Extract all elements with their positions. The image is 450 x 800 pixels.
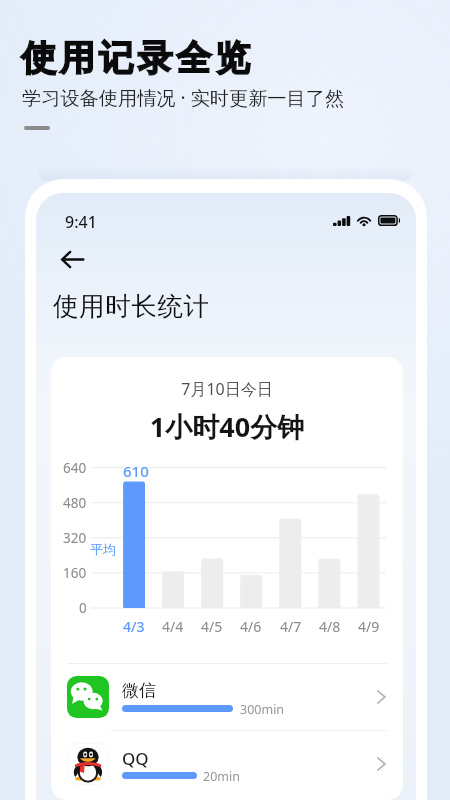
staticText: 610 — [123, 461, 149, 481]
staticText: 1小时40分钟 — [51, 408, 403, 445]
button[interactable]: QQ — [51, 730, 403, 797]
staticText: 4/8 — [319, 617, 341, 636]
staticText: 使用记录全览 — [21, 36, 254, 80]
staticText: 160 — [63, 564, 87, 582]
staticText: 20min — [203, 768, 240, 785]
button[interactable]: Back — [52, 239, 92, 279]
staticText: 4/3 — [123, 617, 145, 636]
staticText: 640 — [63, 459, 87, 477]
staticText: 使用记录全览 — [21, 36, 254, 80]
staticText: 320 — [63, 529, 87, 547]
staticText: 微信 — [122, 680, 156, 701]
staticText: 7月10日今日 — [51, 378, 403, 400]
staticText: 4/5 — [201, 617, 223, 636]
staticText: 使用时长统计 — [53, 290, 210, 322]
staticText: 4/9 — [358, 617, 380, 636]
staticText: 学习设备使用情况 · 实时更新一目了然 — [22, 84, 345, 110]
button[interactable]: 微信 — [51, 663, 403, 730]
staticText: QQ — [122, 747, 149, 770]
staticText: 4/7 — [280, 617, 302, 636]
staticText: 480 — [63, 494, 87, 512]
staticText: 4/4 — [162, 617, 184, 636]
staticText: 300min — [240, 701, 285, 718]
staticText: 9:41 — [65, 211, 97, 233]
staticText: 4/6 — [240, 617, 262, 636]
staticText: 0 — [79, 599, 87, 617]
staticText: 平均 — [90, 541, 116, 557]
